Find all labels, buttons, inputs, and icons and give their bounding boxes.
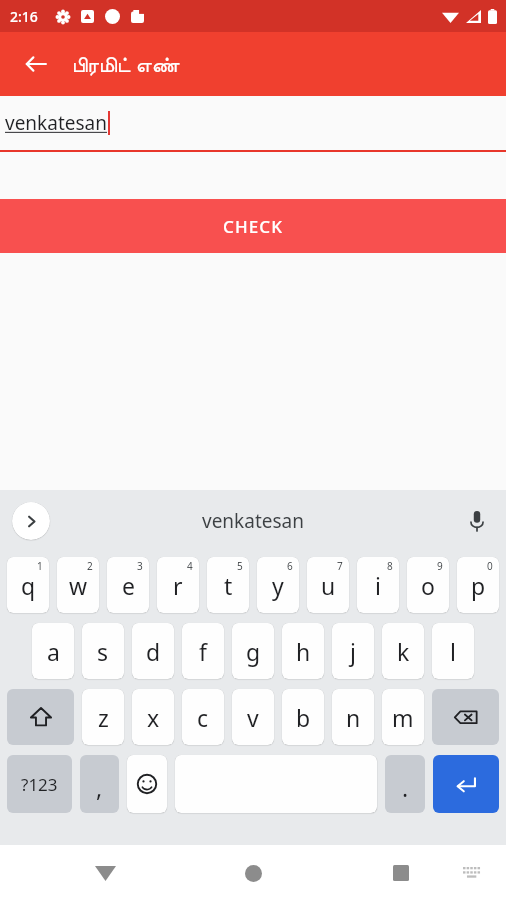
button[interactable]: h bbox=[282, 623, 324, 679]
button[interactable]: , bbox=[80, 755, 119, 813]
staticText: r bbox=[173, 570, 183, 601]
staticText: x bbox=[147, 702, 160, 733]
button[interactable]: More suggestions bbox=[12, 502, 50, 540]
staticText: பிரமிட் எண் bbox=[72, 50, 180, 79]
button[interactable]: Home bbox=[233, 853, 273, 893]
button[interactable]: u bbox=[307, 557, 349, 613]
button[interactable]: l bbox=[432, 623, 474, 679]
staticText: b bbox=[296, 702, 311, 733]
staticText: g bbox=[246, 636, 261, 667]
staticText: v bbox=[247, 702, 259, 733]
staticText: k bbox=[397, 636, 410, 667]
button[interactable]: s bbox=[82, 623, 124, 679]
button[interactable]: ?123 bbox=[7, 755, 72, 813]
button[interactable]: Emoji bbox=[127, 755, 167, 813]
staticText: a bbox=[47, 636, 60, 667]
button[interactable]: g bbox=[232, 623, 274, 679]
button[interactable]: a bbox=[32, 623, 74, 679]
staticText: 0 bbox=[487, 559, 493, 573]
button[interactable]: . bbox=[385, 755, 425, 813]
staticText: 8 bbox=[387, 559, 393, 573]
button[interactable]: v bbox=[232, 689, 274, 745]
button[interactable]: b bbox=[282, 689, 324, 745]
staticText: d bbox=[146, 636, 161, 667]
button[interactable]: k bbox=[382, 623, 424, 679]
button[interactable]: j bbox=[332, 623, 374, 679]
staticText: q bbox=[21, 570, 36, 601]
staticText: t bbox=[224, 570, 233, 601]
staticText: o bbox=[421, 570, 435, 601]
staticText: 5 bbox=[237, 559, 243, 573]
staticText: c bbox=[197, 702, 209, 733]
button[interactable]: e bbox=[107, 557, 149, 613]
staticText: ?123 bbox=[21, 773, 58, 796]
button[interactable]: venkatesan bbox=[202, 508, 304, 534]
staticText: f bbox=[199, 636, 207, 667]
staticText: l bbox=[450, 636, 456, 667]
button[interactable]: Back bbox=[85, 853, 125, 893]
staticText: . bbox=[402, 772, 409, 803]
staticText: h bbox=[296, 636, 311, 667]
staticText: i bbox=[375, 570, 381, 601]
button[interactable]: w bbox=[57, 557, 99, 613]
button[interactable]: z bbox=[82, 689, 124, 745]
button[interactable]: m bbox=[382, 689, 424, 745]
staticText: j bbox=[350, 636, 356, 667]
staticText: p bbox=[471, 570, 486, 601]
button[interactable]: r bbox=[157, 557, 199, 613]
staticText: e bbox=[122, 570, 135, 601]
staticText: 4 bbox=[187, 559, 193, 573]
staticText: 1 bbox=[37, 559, 43, 573]
button[interactable]: CHECK bbox=[0, 199, 506, 253]
staticText: u bbox=[321, 570, 336, 601]
staticText: 2:16 bbox=[10, 7, 38, 26]
button[interactable]: t bbox=[207, 557, 249, 613]
button[interactable]: Recents bbox=[381, 853, 421, 893]
button[interactable]: y bbox=[257, 557, 299, 613]
staticText: CHECK bbox=[223, 215, 284, 238]
staticText: 7 bbox=[337, 559, 343, 573]
staticText: 2 bbox=[87, 559, 93, 573]
staticText: s bbox=[97, 636, 109, 667]
button[interactable]: Enter bbox=[433, 755, 499, 813]
staticText: w bbox=[69, 570, 88, 601]
button[interactable]: Back bbox=[14, 42, 58, 86]
button[interactable]: c bbox=[182, 689, 224, 745]
staticText: 6 bbox=[287, 559, 293, 573]
staticText: m bbox=[392, 702, 414, 733]
button[interactable]: Shift bbox=[7, 689, 74, 745]
staticText: , bbox=[96, 772, 103, 803]
button[interactable]: x bbox=[132, 689, 174, 745]
button[interactable]: i bbox=[357, 557, 399, 613]
button[interactable]: q bbox=[7, 557, 49, 613]
staticText: n bbox=[346, 702, 361, 733]
button[interactable]: f bbox=[182, 623, 224, 679]
button[interactable]: Backspace bbox=[432, 689, 499, 745]
button[interactable]: Hide keyboard bbox=[456, 857, 488, 889]
button[interactable]: n bbox=[332, 689, 374, 745]
staticText: 3 bbox=[137, 559, 143, 573]
staticText: 9 bbox=[437, 559, 443, 573]
staticText: y bbox=[272, 570, 284, 601]
staticText: venkatesan bbox=[5, 110, 107, 136]
button[interactable]: p bbox=[457, 557, 499, 613]
staticText: z bbox=[98, 702, 109, 733]
button[interactable]: o bbox=[407, 557, 449, 613]
button[interactable]: Voice input bbox=[460, 504, 494, 538]
button[interactable]: d bbox=[132, 623, 174, 679]
